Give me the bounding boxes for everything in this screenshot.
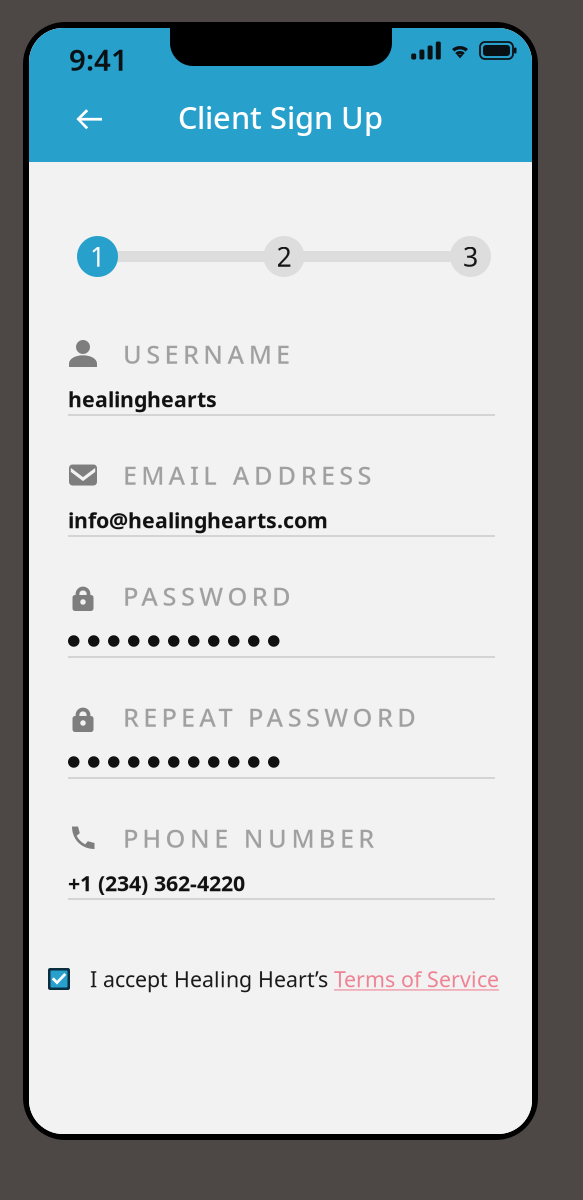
- button[interactable]: Back: [59, 92, 119, 147]
- button[interactable]: Step 3: [450, 236, 491, 277]
- staticText: USERNAME: [123, 337, 290, 371]
- staticText: Terms of Service: [334, 965, 499, 993]
- staticText: info@healinghearts.com: [68, 506, 328, 534]
- staticText: PHONE NUMBER: [123, 821, 374, 855]
- button[interactable]: I accept Healing Heart’s: [48, 955, 499, 1003]
- staticText: 2: [276, 239, 291, 274]
- staticText: I accept Healing Heart’s: [90, 965, 334, 993]
- staticText: 1: [90, 239, 105, 274]
- staticText: PASSWORD: [123, 579, 291, 613]
- button[interactable]: Step 1: [77, 236, 118, 277]
- staticText: REPEAT PASSWORD: [123, 700, 416, 734]
- staticText: +1 (234) 362-4220: [68, 869, 245, 897]
- staticText: healinghearts: [68, 385, 217, 413]
- staticText: 9:41: [69, 40, 128, 79]
- staticText: 3: [463, 239, 478, 274]
- staticText: Client Sign Up: [178, 97, 383, 137]
- staticText: EMAIL ADDRESS: [123, 458, 372, 492]
- button[interactable]: Step 2: [263, 236, 304, 277]
